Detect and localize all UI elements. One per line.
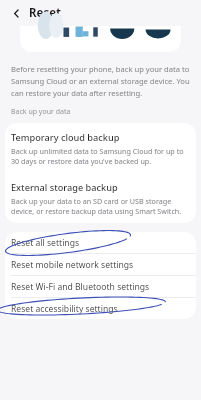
- button[interactable]: Reset all settings: [5, 232, 196, 253]
- staticText: Before resetting your phone, back up you…: [11, 64, 190, 98]
- staticText: External storage backup: [11, 181, 118, 194]
- staticText: Reset mobile network settings: [11, 259, 134, 271]
- button[interactable]: Reset accessibility settings: [5, 298, 196, 319]
- button[interactable]: External storage backup: [5, 173, 196, 218]
- staticText: Back up your data: [11, 107, 71, 117]
- button[interactable]: Reset Wi-Fi and Bluetooth settings: [5, 276, 196, 297]
- staticText: Reset Wi-Fi and Bluetooth settings: [11, 281, 150, 293]
- staticText: Back up your data to an SD card or USB s…: [11, 196, 188, 216]
- button[interactable]: Back: [7, 4, 25, 22]
- staticText: Reset all settings: [11, 237, 80, 249]
- staticText: Back up unlimited data to Samsung Cloud …: [11, 146, 188, 166]
- button[interactable]: Temporary cloud backup: [5, 123, 196, 168]
- staticText: Temporary cloud backup: [11, 131, 120, 144]
- staticText: Reset: [29, 5, 62, 21]
- staticText: Reset accessibility settings: [11, 303, 118, 315]
- button[interactable]: Reset mobile network settings: [5, 254, 196, 275]
